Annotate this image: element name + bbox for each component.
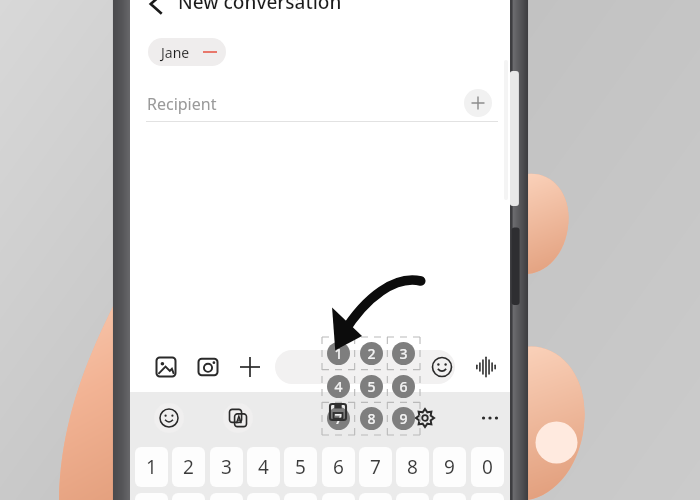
button[interactable]: Add recipient xyxy=(464,89,492,117)
staticText: 9 xyxy=(399,409,408,428)
button[interactable]: More xyxy=(475,403,505,433)
button[interactable] xyxy=(359,493,392,500)
staticText: 2 xyxy=(183,454,194,480)
button[interactable]: Back xyxy=(138,0,174,22)
button[interactable]: 0 xyxy=(471,447,504,487)
button[interactable]: Keyboard settings xyxy=(410,403,440,433)
button[interactable]: 5 xyxy=(360,375,383,398)
button[interactable]: 4 xyxy=(247,447,280,487)
button[interactable]: 5 xyxy=(284,447,317,487)
staticText: Jane xyxy=(161,43,190,62)
button[interactable]: 3 xyxy=(392,342,415,365)
staticText: 4 xyxy=(258,454,269,480)
staticText: 4 xyxy=(334,377,343,396)
staticText: 1 xyxy=(334,344,343,363)
button[interactable]: 6 xyxy=(322,447,355,487)
staticText: 6 xyxy=(399,377,408,396)
button[interactable] xyxy=(471,493,504,500)
button[interactable]: 1 xyxy=(135,447,168,487)
button[interactable] xyxy=(172,493,205,500)
staticText: 5 xyxy=(367,377,376,396)
button[interactable]: Insert image xyxy=(150,351,182,383)
button[interactable]: Voice message xyxy=(470,351,502,383)
button[interactable]: 7 xyxy=(327,407,350,430)
button[interactable]: 8 xyxy=(360,407,383,430)
button[interactable] xyxy=(247,493,280,500)
button[interactable] xyxy=(284,493,317,500)
button[interactable]: Translate xyxy=(223,403,253,433)
staticText: 7 xyxy=(370,454,381,480)
button[interactable] xyxy=(210,493,243,500)
button[interactable]: 3 xyxy=(210,447,243,487)
staticText: 0 xyxy=(482,454,493,480)
button[interactable]: 7 xyxy=(359,447,392,487)
button[interactable]: 9 xyxy=(392,407,415,430)
button[interactable]: Jane xyxy=(148,38,226,66)
button[interactable]: 1 xyxy=(327,342,350,365)
button[interactable]: Emoji keyboard xyxy=(154,403,184,433)
staticText: New conversation xyxy=(178,0,342,15)
staticText: Recipient xyxy=(147,93,217,115)
button[interactable]: 9 xyxy=(433,447,466,487)
button[interactable] xyxy=(135,493,168,500)
button[interactable] xyxy=(433,493,466,500)
staticText: 8 xyxy=(407,454,418,480)
staticText: 8 xyxy=(367,409,376,428)
staticText: 3 xyxy=(221,454,232,480)
button[interactable]: Emoji xyxy=(426,351,458,383)
button[interactable] xyxy=(322,493,355,500)
staticText: 6 xyxy=(333,454,344,480)
staticText: 7 xyxy=(334,409,343,428)
staticText: 3 xyxy=(399,344,408,363)
button[interactable]: 2 xyxy=(360,342,383,365)
button[interactable]: 2 xyxy=(172,447,205,487)
button[interactable]: 6 xyxy=(392,375,415,398)
staticText: 1 xyxy=(146,454,157,480)
button[interactable]: 8 xyxy=(396,447,429,487)
button[interactable]: Camera xyxy=(192,351,224,383)
staticText: 2 xyxy=(367,344,376,363)
staticText: 9 xyxy=(444,454,455,480)
button[interactable]: 4 xyxy=(327,375,350,398)
button[interactable]: More options xyxy=(234,351,266,383)
button[interactable] xyxy=(396,493,429,500)
staticText: 5 xyxy=(295,454,306,480)
button[interactable] xyxy=(275,350,455,384)
